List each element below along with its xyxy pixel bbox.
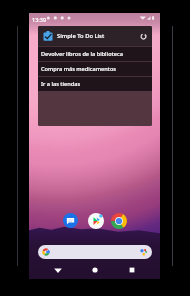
button[interactable]: Devolver libros de la biblioteca — [38, 47, 152, 61]
staticText: Simple To Do List — [57, 32, 105, 40]
button[interactable]: Home — [88, 263, 102, 277]
button[interactable]: Search — [38, 245, 152, 259]
staticText: 13:39 — [32, 16, 47, 23]
button[interactable]: Messages — [63, 213, 78, 228]
button[interactable]: Play Store — [88, 213, 104, 229]
staticText: Ir a las tiendas — [41, 80, 81, 88]
button[interactable]: Simple To Do List — [38, 26, 152, 46]
button[interactable]: Refresh — [139, 32, 148, 41]
button[interactable]: Recents — [125, 263, 139, 277]
staticText: Compra más medicamentos — [41, 65, 117, 73]
button[interactable]: Compra más medicamentos — [38, 62, 152, 76]
button[interactable]: Ir a las tiendas — [38, 77, 152, 91]
staticText: Devolver libros de la biblioteca — [41, 50, 123, 58]
button[interactable]: Back — [51, 263, 65, 277]
button[interactable]: Chrome — [111, 213, 127, 229]
